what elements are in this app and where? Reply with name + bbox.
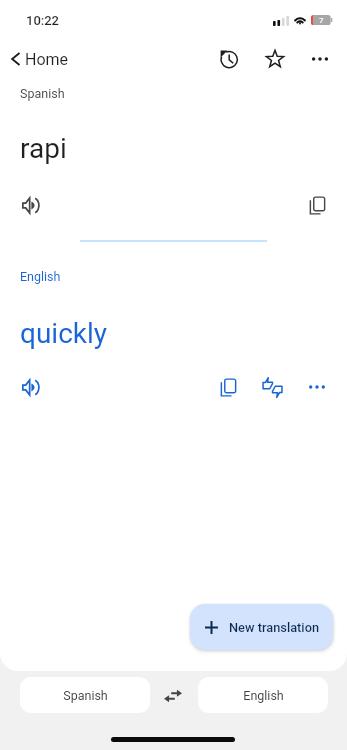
staticText: Spanish [63, 688, 108, 703]
staticText: English [20, 269, 61, 284]
staticText: Spanish [20, 86, 65, 101]
staticText: rapi [20, 132, 67, 165]
button[interactable]: History [212, 42, 246, 76]
button[interactable]: Listen [13, 188, 47, 222]
button[interactable]: Copy [211, 370, 245, 404]
button[interactable]: Rate translation [255, 370, 289, 404]
button[interactable]: Swap languages [158, 681, 188, 711]
button[interactable]: Copy [300, 188, 334, 222]
staticText: English [243, 688, 284, 703]
button[interactable]: Spanish [20, 677, 150, 713]
button[interactable]: English [198, 677, 328, 713]
button[interactable]: Listen [13, 370, 47, 404]
button[interactable]: New translation [190, 604, 333, 650]
button[interactable]: More options [303, 42, 337, 76]
button[interactable]: Favorite [258, 42, 292, 76]
staticText: 7 [319, 16, 324, 25]
staticText: Home [25, 50, 69, 69]
button[interactable]: More options [300, 370, 334, 404]
staticText: New translation [229, 620, 320, 635]
button[interactable]: Home [4, 44, 79, 74]
staticText: 10:22 [26, 13, 60, 28]
staticText: quickly [20, 317, 108, 350]
